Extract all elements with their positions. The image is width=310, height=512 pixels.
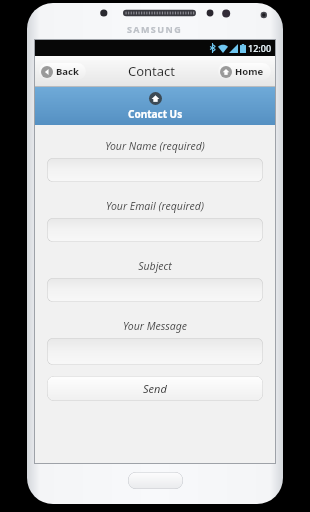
button[interactable] [47, 158, 263, 182]
staticText: 12:00 [248, 42, 272, 54]
staticText: Back [56, 65, 79, 78]
staticText: Contact [128, 62, 176, 80]
staticText: Subject [47, 259, 263, 273]
button[interactable] [47, 338, 263, 365]
button[interactable]: Back [39, 63, 86, 80]
button[interactable]: Send [47, 376, 263, 401]
button[interactable]: Home [218, 63, 271, 80]
staticText: SAMSUNG [127, 23, 183, 35]
staticText: Home [235, 65, 264, 78]
staticText: Your Email (required) [47, 199, 263, 213]
staticText: Contact Us [128, 107, 183, 121]
button[interactable] [47, 218, 263, 242]
button[interactable]: Contact Us [35, 87, 275, 125]
button[interactable] [47, 278, 263, 302]
staticText: Send [143, 381, 167, 396]
staticText: Your Name (required) [47, 139, 263, 153]
staticText: Your Message [47, 319, 263, 333]
button[interactable]: Home button [128, 472, 183, 489]
